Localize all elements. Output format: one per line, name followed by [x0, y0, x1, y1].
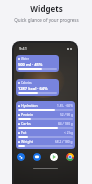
- staticText: Quick glance of your progress: [14, 17, 79, 23]
- button[interactable]: Chrome: [66, 153, 74, 161]
- staticText: 52 / 90 g: [60, 113, 73, 117]
- button[interactable]: Carbs: [18, 121, 73, 129]
- button[interactable]: Phone: [17, 153, 25, 161]
- staticText: Fat: [21, 130, 27, 135]
- staticText: 68.2 / 180 g: [55, 140, 73, 144]
- button[interactable]: Weight: [18, 139, 73, 147]
- button[interactable]: Play Store: [50, 153, 58, 161]
- button[interactable]: Fat: [18, 130, 73, 138]
- staticText: < 2 kg: [64, 131, 73, 135]
- button[interactable]: Hydration: [18, 103, 73, 111]
- button[interactable]: Water: [16, 55, 59, 72]
- staticText: Hydration: [21, 103, 38, 108]
- button[interactable]: Hydration: [16, 101, 75, 149]
- staticText: 1.8 L · 60%: [57, 104, 73, 108]
- button[interactable]: Calories: [16, 79, 59, 96]
- staticText: 1287 kcal · 64%: [18, 86, 48, 91]
- staticText: Calories: [21, 81, 32, 85]
- staticText: Carbs: [21, 121, 31, 126]
- staticText: Protein: [21, 112, 34, 117]
- staticText: 9:41: [19, 46, 27, 51]
- staticText: Widgets: [30, 3, 63, 14]
- staticText: Water: [21, 57, 29, 61]
- staticText: Weight: [21, 139, 33, 144]
- staticText: 500 ml · 45%: [18, 62, 43, 67]
- button[interactable]: Messages: [33, 153, 41, 161]
- staticText: 84 / 180 g: [58, 122, 73, 126]
- button[interactable]: Protein: [18, 112, 73, 120]
